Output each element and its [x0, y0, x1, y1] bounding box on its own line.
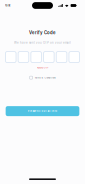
staticText: We have sent you OTP on your email — [14, 41, 71, 45]
button[interactable]: Terms & Conditions — [30, 76, 55, 79]
staticText: Please fill out all info — [27, 110, 57, 113]
button[interactable]: Resend OTP — [37, 66, 48, 69]
button[interactable]: Please fill out all info — [6, 106, 79, 116]
staticText: Verify Code — [29, 30, 56, 35]
staticText: Resend OTP — [37, 66, 48, 69]
staticText: 12:32 — [5, 4, 10, 7]
staticText: Terms & Conditions — [34, 76, 55, 79]
